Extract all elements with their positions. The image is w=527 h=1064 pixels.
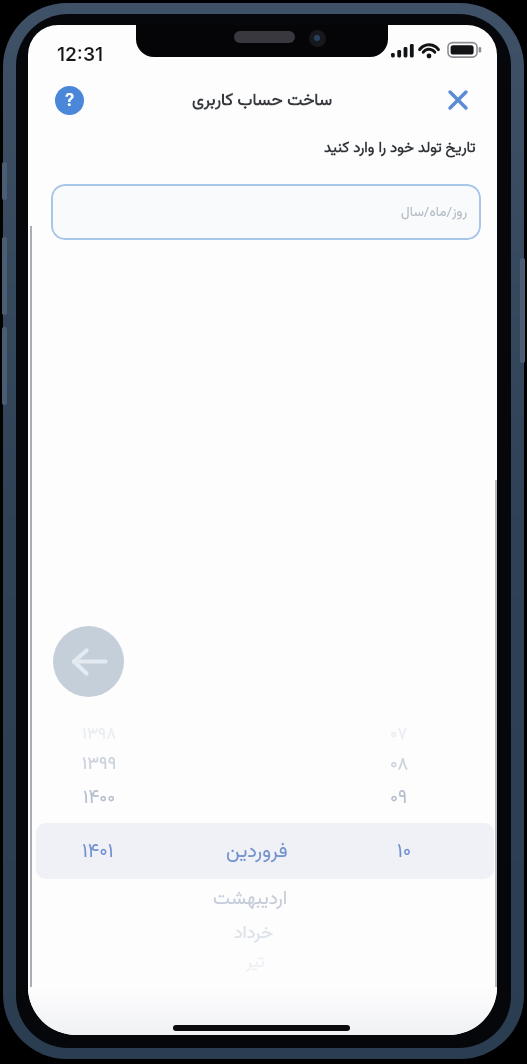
button[interactable] bbox=[443, 85, 473, 115]
button[interactable]: ۱۰ bbox=[329, 833, 479, 869]
staticText: ۰۸ bbox=[390, 751, 409, 779]
staticText: ۱۴۰۱ bbox=[82, 836, 114, 867]
button[interactable] bbox=[53, 626, 124, 697]
staticText: اردیبهشت bbox=[213, 885, 288, 915]
staticText: ۱۳۹۸ bbox=[82, 722, 117, 749]
staticText: تاریخ تولد خود را وارد کنید bbox=[324, 137, 476, 160]
staticText: ۱۰ bbox=[397, 836, 412, 867]
staticText: 12:31 bbox=[57, 43, 104, 66]
button[interactable]: ۱۴۰۰ bbox=[28, 781, 174, 817]
button[interactable]: ۰۸ bbox=[324, 747, 474, 783]
button[interactable]: ۰۹ bbox=[324, 781, 474, 817]
button[interactable]: روز/ماه/سال bbox=[51, 184, 481, 240]
button[interactable]: خرداد bbox=[179, 916, 329, 952]
button[interactable]: ۱۳۹۹ bbox=[28, 747, 174, 783]
staticText: ۱۴۰۰ bbox=[83, 784, 116, 814]
button[interactable]: ۱۴۰۱ bbox=[28, 833, 173, 869]
button[interactable]: فروردین bbox=[182, 833, 332, 869]
button[interactable]: ۱۳۹۸ bbox=[28, 717, 174, 753]
staticText: ۰۷ bbox=[390, 722, 408, 749]
staticText: روز/ماه/سال bbox=[401, 202, 468, 223]
staticText: ? bbox=[65, 90, 75, 111]
staticText: خرداد bbox=[234, 920, 274, 948]
staticText: ۰۹ bbox=[390, 784, 408, 814]
staticText: ۱۳۹۹ bbox=[82, 751, 117, 779]
staticText: فروردین bbox=[226, 836, 288, 867]
button[interactable] bbox=[36, 823, 494, 879]
button[interactable]: ? bbox=[55, 86, 84, 115]
staticText: تیر bbox=[246, 950, 265, 977]
button[interactable]: اردیبهشت bbox=[175, 882, 325, 918]
staticText: ساخت حساب کاربری bbox=[192, 88, 333, 115]
